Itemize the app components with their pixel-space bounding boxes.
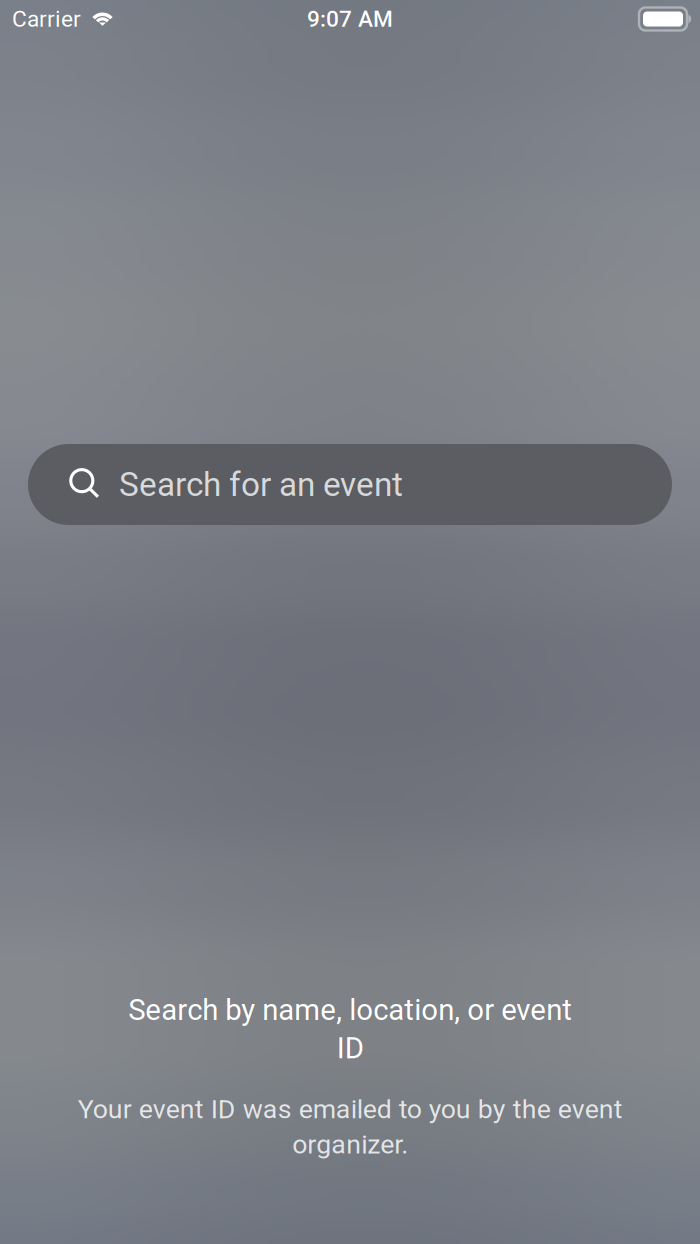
staticText: Your event ID was emailed to you by the … <box>77 1093 622 1160</box>
staticText: Search for an event <box>119 465 403 504</box>
staticText: Carrier <box>12 6 81 32</box>
button[interactable]: Search for an event <box>0 444 700 525</box>
staticText: 9:07 AM <box>307 6 393 32</box>
staticText: Search by name, location, or event ID <box>128 993 572 1065</box>
